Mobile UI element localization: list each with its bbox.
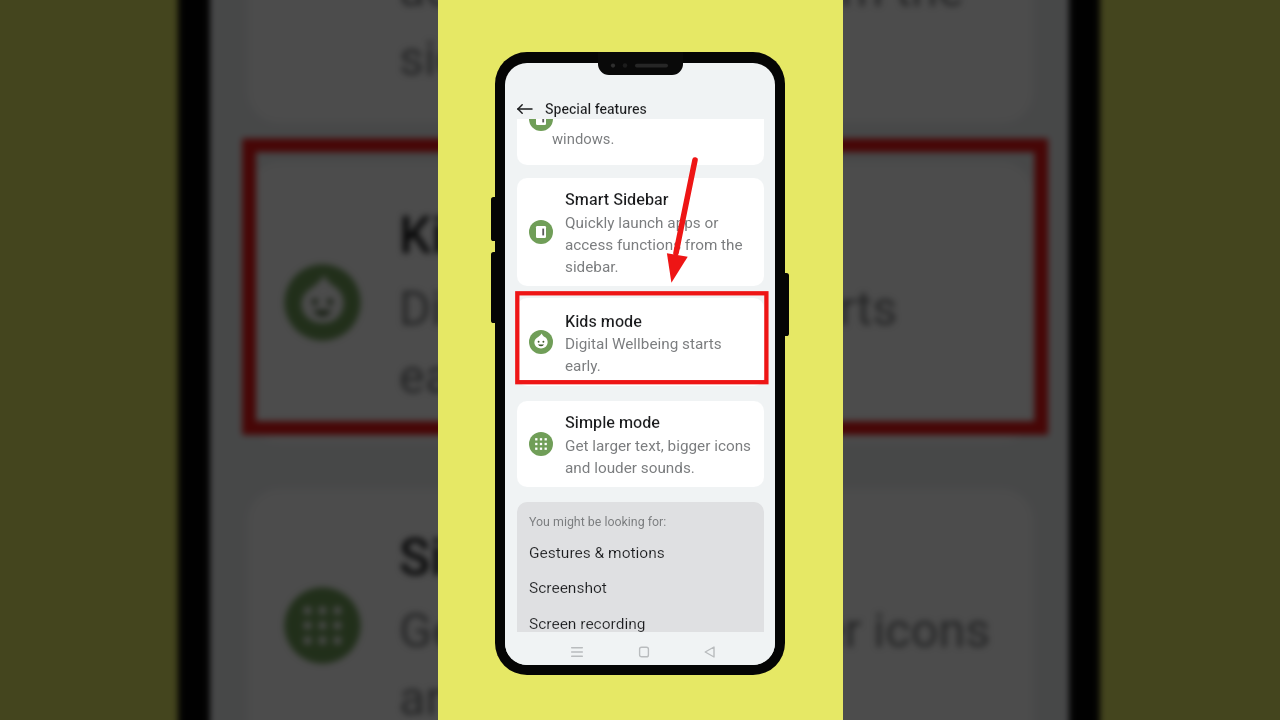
- staticText: Special features: [545, 101, 647, 118]
- staticText: Simple mode: [565, 413, 661, 432]
- staticText: Smart Sidebar: [565, 190, 669, 209]
- staticText: Get larger text, bigger icons and louder…: [565, 437, 764, 477]
- button[interactable]: Recent apps: [567, 642, 587, 662]
- button[interactable]: Home: [634, 642, 654, 662]
- staticText: windows.: [552, 130, 615, 147]
- button[interactable]: Back: [515, 99, 535, 119]
- button[interactable]: Screen recording: [517, 615, 764, 632]
- staticText: You might be looking for:: [529, 514, 667, 529]
- staticText: Get larger text, bigger icons and louder…: [399, 602, 1033, 720]
- staticText: Simple mode: [399, 527, 702, 587]
- staticText: Quickly launch apps or access functions …: [565, 214, 764, 276]
- button[interactable]: Back: [700, 642, 720, 662]
- button[interactable]: Simple mode: [517, 401, 764, 487]
- staticText: Digital Wellbeing starts early.: [565, 335, 764, 375]
- staticText: Kids mode: [565, 312, 642, 331]
- button[interactable]: Smart Sidebar: [517, 178, 764, 286]
- button[interactable]: Screenshot: [517, 579, 764, 609]
- button[interactable]: Kids mode: [517, 298, 764, 386]
- button[interactable]: Kids mode: [248, 162, 1033, 442]
- staticText: Kids mode: [399, 205, 644, 265]
- button[interactable]: Simple mode: [248, 489, 1033, 720]
- button[interactable]: Smart Sidebar: [248, 0, 1033, 123]
- staticText: Quickly launch apps or access functions …: [399, 0, 1033, 87]
- button[interactable]: Gestures & motions: [517, 544, 764, 574]
- staticText: Digital Wellbeing starts early.: [399, 280, 1033, 405]
- button[interactable]: windows.: [517, 119, 764, 165]
